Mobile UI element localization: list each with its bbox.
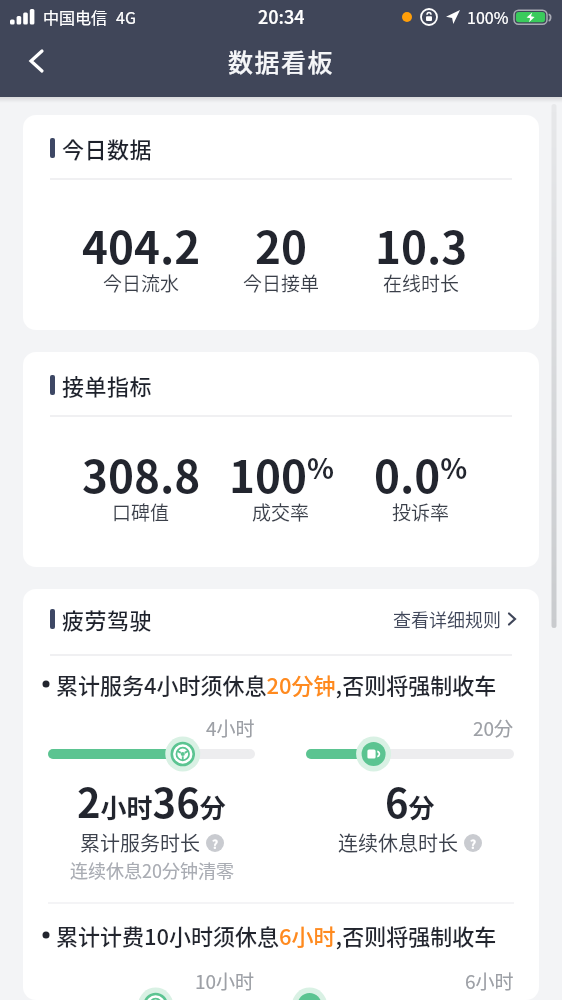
staticText: 在线时长	[383, 269, 460, 297]
staticText: 6分	[385, 772, 435, 830]
staticText: 连续休息20分钟清零	[70, 857, 234, 883]
button[interactable]: ?	[206, 834, 224, 852]
staticText: 疲劳驾驶	[62, 603, 153, 635]
staticText: 今日流水	[103, 269, 180, 297]
staticText: 今日数据	[62, 132, 153, 164]
staticText: 308.8	[82, 442, 201, 506]
staticText: 10.3	[375, 213, 468, 277]
button[interactable]: 查看详细规则	[393, 606, 517, 632]
button[interactable]	[20, 43, 56, 79]
staticText: ?	[470, 835, 477, 852]
staticText: 6小时	[465, 967, 514, 995]
staticText: 10小时	[195, 967, 255, 995]
staticText: 连续休息时长	[338, 828, 458, 857]
staticText: 20	[255, 213, 307, 277]
staticText: 累计服务时长	[80, 828, 200, 857]
staticText: 今日接单	[243, 269, 320, 297]
staticText: 4G	[116, 5, 136, 28]
staticText: 查看详细规则	[393, 606, 501, 632]
staticText: 中国电信	[43, 5, 108, 28]
staticText: ?	[212, 835, 219, 852]
staticText: 累计计费10小时须休息6小时,否则将强制收车	[56, 919, 497, 951]
staticText: 20分	[473, 714, 514, 742]
staticText: 100%	[467, 5, 509, 28]
staticText: 数据看板	[228, 43, 335, 79]
staticText: 0.0%	[374, 442, 468, 506]
button[interactable]: ?	[464, 834, 482, 852]
staticText: 2小时36分	[77, 772, 226, 830]
staticText: 成交率	[252, 498, 310, 526]
staticText: 口碑值	[112, 498, 170, 526]
staticText: 投诉率	[392, 498, 450, 526]
staticText: 100%	[229, 442, 334, 506]
staticText: 累计服务4小时须休息20分钟,否则将强制收车	[56, 668, 497, 700]
staticText: 接单指标	[62, 369, 153, 401]
staticText: 20:34	[258, 3, 305, 29]
staticText: 404.2	[82, 213, 201, 277]
staticText: 4小时	[206, 714, 255, 742]
